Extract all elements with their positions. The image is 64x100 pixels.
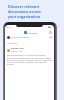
staticText: We are excited to share the new team wor… [7, 54, 52, 66]
button[interactable]: Search [48, 30, 53, 35]
staticText: Share something... [11, 36, 31, 39]
staticText: Connect [28, 31, 38, 34]
staticText: All updates [7, 42, 18, 45]
staticText: Product · 2h [11, 50, 22, 53]
button[interactable]: Connect [5, 29, 54, 35]
staticText: Discover relevant discussions across you… [8, 4, 48, 19]
staticText: ▮▮▮ [48, 26, 52, 28]
button[interactable]: Share something... [7, 35, 52, 40]
staticText: Sophie Lam [11, 47, 24, 50]
button[interactable]: Sophie Lam [7, 47, 52, 66]
staticText: 9:41 [7, 26, 11, 29]
